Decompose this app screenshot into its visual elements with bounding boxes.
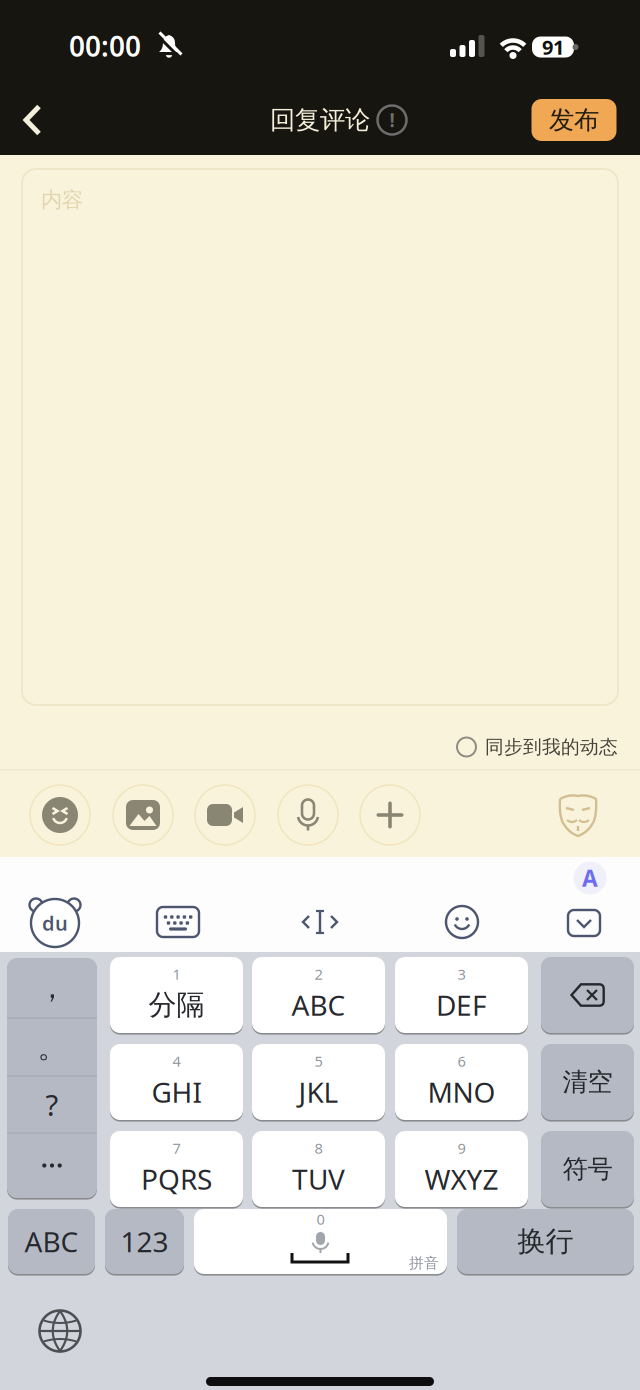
staticText: 。 [37,1029,66,1065]
staticText: ? [45,1085,58,1124]
button[interactable] [113,785,173,845]
staticText: 发布 [549,104,599,135]
button[interactable]: ? [7,1076,97,1132]
button[interactable]: du [28,897,82,947]
staticText: JKL [298,1073,338,1111]
staticText: 4 [172,1051,180,1071]
button[interactable]: 6 [395,1044,528,1120]
staticText: 91 [542,34,564,60]
staticText: 拼音 [409,1254,439,1272]
staticText: WXYZ [424,1160,498,1198]
staticText: 3 [457,964,465,984]
button[interactable]: 4 [110,1044,243,1120]
button[interactable]: 符号 [541,1131,634,1207]
button[interactable]: 8 [252,1131,385,1207]
staticText: 7 [172,1138,180,1158]
staticText: ， [37,970,66,1006]
staticText: 清空 [562,1066,612,1097]
button[interactable]: 同步到我的动态 [22,727,618,767]
staticText: 分隔 [148,988,204,1022]
button[interactable] [557,793,599,837]
button[interactable]: 发布 [531,99,616,141]
staticText: 换行 [517,1224,573,1259]
staticText: GHI [151,1073,201,1111]
staticText: 0 [316,1209,324,1229]
staticText: 2 [314,964,322,984]
staticText: 00:00 [69,27,141,65]
button[interactable] [38,1309,81,1352]
staticText: DEF [436,986,487,1024]
staticText: 符号 [562,1153,612,1184]
staticText: du [42,910,68,936]
button[interactable]: 1 [110,957,243,1033]
button[interactable]: 7 [110,1131,243,1207]
button[interactable]: A [573,861,606,894]
staticText: 6 [457,1051,465,1071]
button[interactable] [360,785,420,845]
button[interactable] [541,957,634,1033]
staticText: 回复评论 [270,104,370,135]
staticText: 5 [314,1051,322,1071]
staticText: 1 [172,964,180,984]
button[interactable]: 2 [252,957,385,1033]
button[interactable] [301,908,339,936]
button[interactable]: 换行 [457,1209,634,1274]
staticText: A [582,863,598,893]
staticText: 同步到我的动态 [485,735,618,758]
button[interactable]: 3 [395,957,528,1033]
button[interactable] [30,785,90,845]
button[interactable] [157,907,199,937]
staticText: MNO [427,1073,495,1111]
button[interactable]: 123 [105,1209,184,1274]
button[interactable] [195,785,255,845]
button[interactable] [568,910,600,936]
button[interactable] [7,1133,97,1197]
button[interactable]: ABC [8,1209,95,1274]
button[interactable]: ， [7,958,97,1017]
button[interactable]: 。 [7,1019,97,1076]
button[interactable]: 清空 [541,1044,634,1120]
staticText: ! [389,108,394,132]
staticText: TUV [292,1160,345,1198]
button[interactable]: 0 [194,1209,447,1274]
staticText: 9 [457,1138,465,1158]
staticText: 内容 [41,187,83,213]
staticText: ABC [24,1223,78,1260]
button[interactable]: 5 [252,1044,385,1120]
button[interactable] [16,99,50,140]
staticText: 8 [314,1138,322,1158]
staticText: 123 [120,1223,168,1260]
staticText: ABC [291,986,345,1024]
button[interactable]: 9 [395,1131,528,1207]
button[interactable] [278,785,338,845]
button[interactable] [446,906,478,938]
staticText: PQRS [141,1160,212,1198]
